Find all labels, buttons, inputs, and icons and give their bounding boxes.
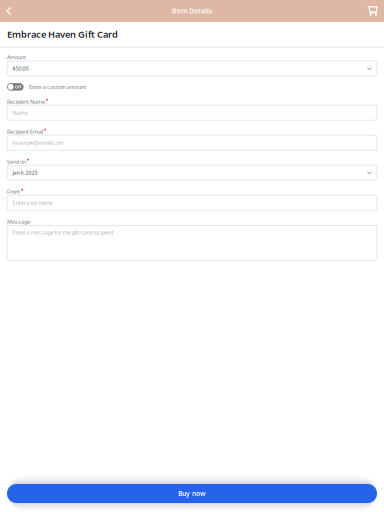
staticText: $50.00 <box>12 65 28 72</box>
staticText: Item Details <box>172 7 212 15</box>
button[interactable]: $50.00 <box>7 61 377 76</box>
staticText: OFF <box>15 84 22 89</box>
staticText: Amount <box>7 54 26 61</box>
staticText: Name <box>12 109 27 116</box>
staticText: Recipient Name <box>7 98 45 105</box>
button[interactable]: Enter a custom amount <box>7 83 24 91</box>
button[interactable]: Buy now <box>0 475 384 512</box>
button[interactable]: Back <box>0 0 20 22</box>
staticText: Jan 6, 2025 <box>12 169 37 176</box>
staticText: Send on <box>7 158 26 165</box>
button[interactable]: Cart <box>360 0 384 22</box>
staticText: Enter a message for the gift card recipi… <box>12 229 113 236</box>
staticText: Recipient Email <box>7 128 43 135</box>
staticText: example@email.com <box>12 139 63 146</box>
staticText: Enter your name <box>12 199 52 206</box>
staticText: Message <box>7 218 30 225</box>
staticText: Buy now <box>178 489 206 498</box>
staticText: Enter a custom amount <box>29 83 86 90</box>
staticText: Embrace Haven Gift Card <box>7 28 118 40</box>
staticText: From <box>7 188 20 195</box>
button[interactable]: Jan 6, 2025 <box>7 165 377 180</box>
